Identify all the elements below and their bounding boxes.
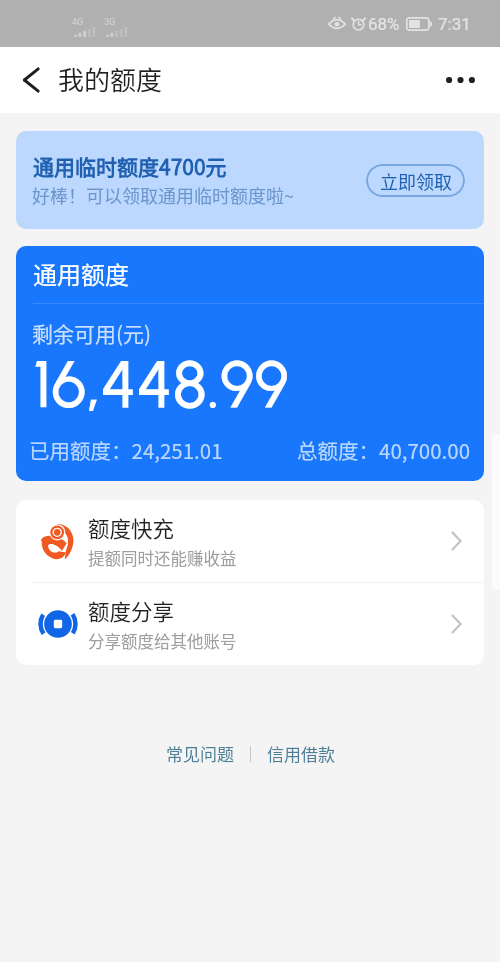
staticText: 3G [104, 17, 116, 28]
staticText: 分享额度给其他账号 [88, 629, 237, 653]
staticText: 4G [72, 17, 84, 28]
button[interactable]: 额度分享 [16, 583, 484, 665]
button[interactable]: 立即领取 [366, 164, 465, 197]
button[interactable]: 额度快充 [16, 500, 484, 582]
button[interactable]: 信用借款 [267, 741, 335, 766]
staticText: 通用额度 [33, 256, 129, 291]
staticText: 提额同时还能赚收益 [88, 546, 237, 570]
staticText: 16,448.99 [33, 345, 289, 423]
button[interactable]: 常见问题 [166, 741, 234, 766]
staticText: 总额度：40,700.00 [297, 435, 471, 465]
staticText: 68% [368, 14, 400, 34]
staticText: 好棒！可以领取通用临时额度啦~ [32, 182, 294, 208]
button[interactable]: More options [433, 53, 487, 107]
staticText: 我的额度 [58, 60, 163, 98]
staticText: 立即领取 [380, 168, 452, 194]
staticText: 常见问题 [166, 741, 234, 766]
button[interactable]: 通用额度 [16, 246, 484, 481]
staticText: 通用临时额度4700元 [33, 151, 227, 181]
staticText: 额度分享 [88, 595, 175, 626]
button[interactable]: Back [6, 55, 56, 105]
staticText: 7:31 [438, 14, 471, 34]
staticText: 额度快充 [88, 512, 175, 543]
staticText: 剩余可用(元) [32, 318, 152, 348]
staticText: 已用额度：24,251.01 [29, 435, 223, 465]
staticText: 信用借款 [267, 741, 335, 766]
button[interactable]: 通用临时额度4700元 [16, 131, 484, 229]
